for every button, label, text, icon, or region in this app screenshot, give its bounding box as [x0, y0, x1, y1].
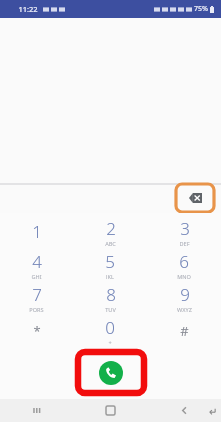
button[interactable]: Recents — [0, 399, 73, 422]
button[interactable]: 0 — [73, 316, 147, 345]
button[interactable]: 5 — [73, 250, 147, 279]
staticText: ABC — [105, 240, 116, 246]
button[interactable]: Back — [147, 399, 221, 422]
staticText: 7 — [32, 283, 42, 306]
button[interactable]: 2 — [73, 217, 147, 246]
staticText: 5 — [105, 250, 115, 273]
staticText: DEF — [179, 240, 190, 246]
staticText: JKL — [106, 273, 114, 279]
staticText: TUV — [105, 306, 116, 312]
staticText: 8 — [106, 283, 116, 306]
staticText: 9 — [180, 283, 190, 306]
staticText: WXYZ — [177, 306, 192, 312]
staticText: PQRS — [29, 306, 44, 312]
button[interactable]: # — [147, 316, 221, 345]
button[interactable]: 6 — [147, 250, 221, 279]
staticText: # — [180, 322, 189, 340]
staticText: 6 — [179, 250, 189, 273]
button[interactable]: 4 — [0, 250, 73, 279]
staticText: 4 — [32, 250, 42, 273]
button[interactable]: Call — [78, 352, 144, 393]
button[interactable]: 3 — [147, 217, 221, 246]
button[interactable]: 1 — [0, 217, 73, 246]
button[interactable]: 9 — [147, 283, 221, 312]
staticText: 1 — [32, 220, 42, 243]
staticText: GHI — [31, 273, 42, 279]
staticText: * — [33, 322, 41, 340]
staticText: 75% — [194, 4, 208, 14]
button[interactable]: Home — [73, 399, 147, 422]
staticText: 2 — [106, 217, 116, 240]
staticText: 11:22 — [18, 4, 38, 14]
staticText: MNO — [177, 273, 191, 279]
button[interactable]: 7 — [0, 283, 73, 312]
staticText: 0 — [105, 316, 115, 339]
staticText: 3 — [180, 217, 190, 240]
button[interactable]: Backspace — [176, 184, 214, 212]
button[interactable]: * — [0, 316, 73, 345]
staticText: + — [108, 339, 112, 345]
button[interactable]: 8 — [73, 283, 147, 312]
